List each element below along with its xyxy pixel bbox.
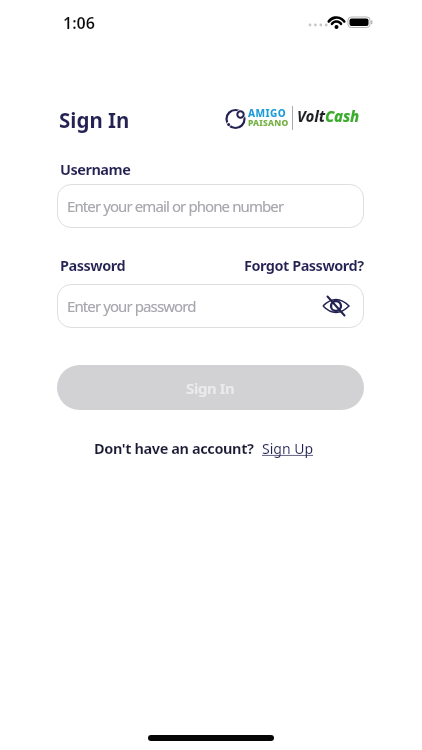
staticText: Sign In — [59, 106, 130, 134]
staticText: Sign Up — [262, 439, 314, 458]
staticText: Don't have an account? — [94, 438, 254, 458]
staticText: Username — [60, 159, 131, 179]
staticText: Enter your password — [67, 296, 196, 316]
button[interactable]: Sign In — [57, 365, 364, 410]
button[interactable]: Forgot Password? — [244, 255, 364, 275]
staticText: 1:06 — [63, 12, 95, 34]
staticText: Password — [60, 255, 126, 275]
staticText: Sign In — [186, 378, 235, 398]
button[interactable]: Sign Up — [262, 439, 314, 458]
staticText: Forgot Password? — [244, 255, 364, 275]
staticText: VoltCash — [297, 106, 359, 126]
staticText: Enter your email or phone number — [67, 196, 284, 216]
button[interactable]: Enter your email or phone number — [57, 184, 364, 228]
staticText: PAISANO — [248, 117, 289, 129]
button[interactable]: Enter your password — [57, 284, 364, 328]
staticText: AMIGO — [248, 106, 286, 120]
button[interactable] — [322, 292, 350, 320]
